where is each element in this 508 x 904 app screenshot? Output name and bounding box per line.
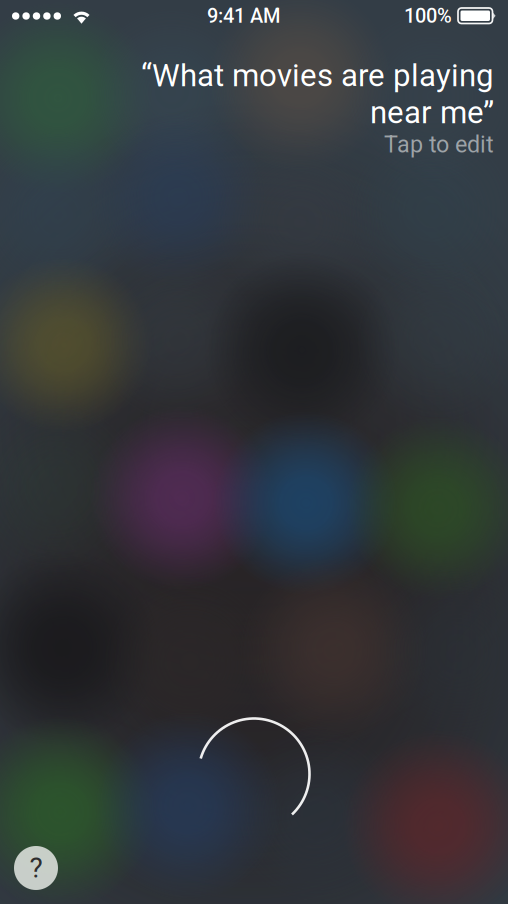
- button[interactable]: Siri help: [14, 846, 58, 890]
- staticText: 100%: [404, 4, 452, 28]
- staticText: near me”: [370, 94, 494, 131]
- staticText: Tap to edit: [384, 131, 494, 158]
- button[interactable]: “What movies are playing: [0, 32, 508, 158]
- staticText: 9:41 AM: [207, 4, 280, 28]
- staticText: ?: [29, 852, 42, 884]
- staticText: “What movies are playing: [141, 57, 494, 94]
